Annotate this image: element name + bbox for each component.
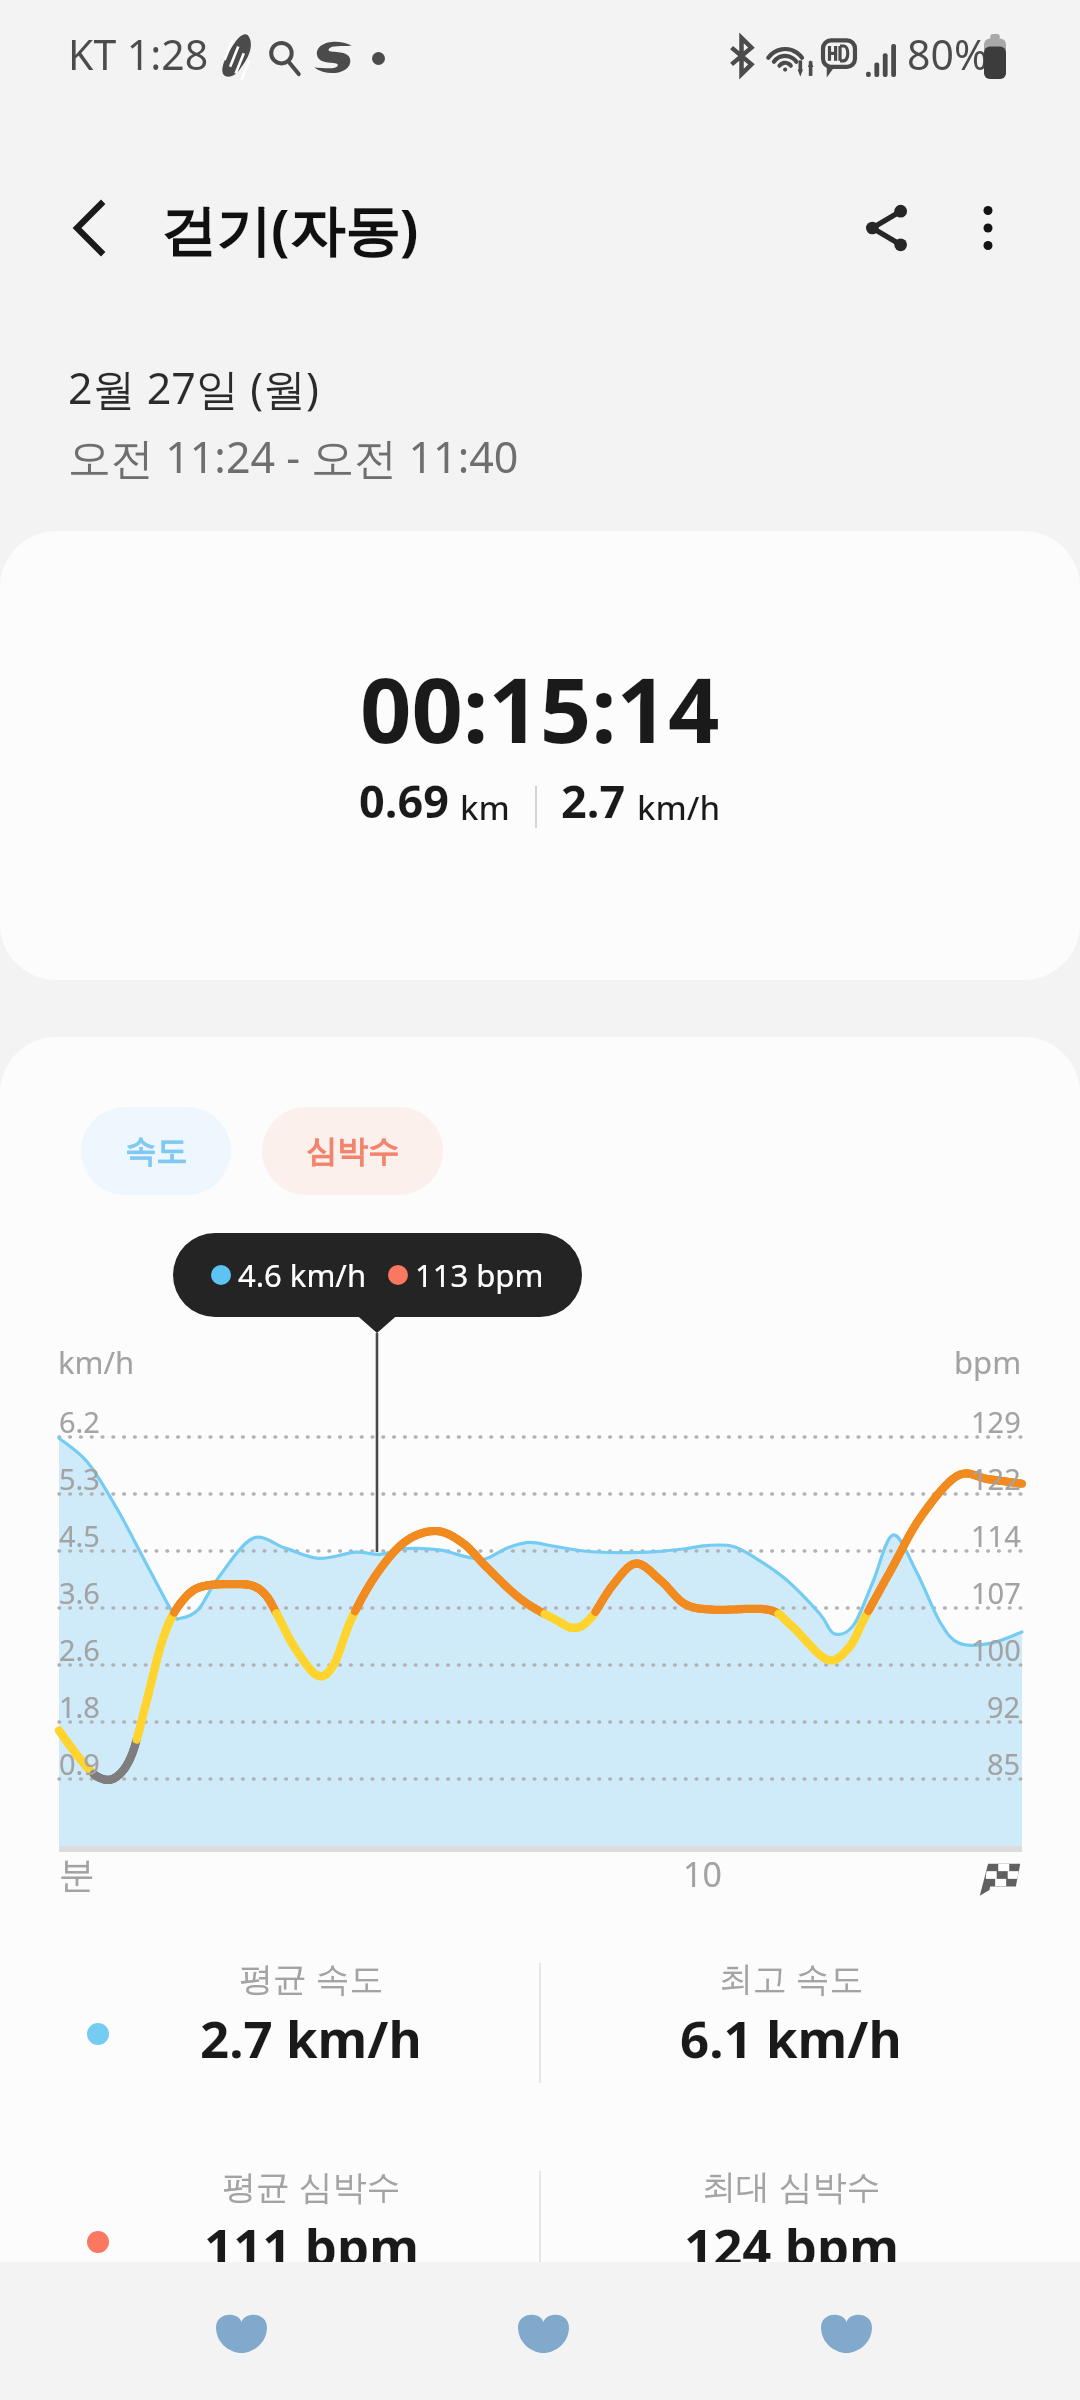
staticText: 6.2 — [59, 1402, 100, 1441]
button[interactable]: 평균 심박수 — [0, 2163, 851, 2280]
staticText: 속도 — [125, 1132, 187, 1171]
staticText: 평균 심박수 — [222, 2163, 401, 2209]
button[interactable]: 심박수 — [262, 1107, 443, 1195]
staticText: 4.5 — [59, 1516, 100, 1555]
button[interactable]: Home — [443, 2262, 643, 2400]
staticText: 심박수 — [306, 1132, 399, 1171]
staticText: 최고 속도 — [719, 1955, 864, 2001]
staticText: 85 — [987, 1744, 1021, 1783]
staticText: 1.8 — [59, 1687, 100, 1726]
staticText: 6.1 km/h — [680, 2003, 902, 2072]
button[interactable]: 최대 심박수 — [251, 2163, 1080, 2280]
button[interactable]: 평균 속도 — [0, 1955, 851, 2072]
button[interactable]: 00:15:14 — [0, 531, 1080, 980]
staticText: 111 bpm — [204, 2211, 419, 2280]
staticText: KT 1:28 — [68, 26, 209, 82]
staticText: 3.6 — [59, 1573, 100, 1612]
staticText: 00:15:14 — [360, 647, 720, 770]
staticText: km — [460, 785, 510, 830]
staticText: 최대 심박수 — [702, 2163, 881, 2209]
button[interactable]: 속도 — [81, 1107, 231, 1195]
staticText: 4.6 km/h — [238, 1254, 367, 1296]
staticText: 129 — [971, 1402, 1021, 1441]
staticText: 92 — [987, 1687, 1021, 1726]
staticText: 2.7 — [561, 770, 626, 831]
staticText: 5.3 — [59, 1459, 100, 1498]
button[interactable]: 최고 속도 — [251, 1955, 1080, 2072]
staticText: 0.9 — [59, 1744, 100, 1783]
staticText: 107 — [971, 1573, 1021, 1612]
staticText: 114 — [971, 1516, 1021, 1555]
staticText: 2월 27일 (월) — [68, 358, 319, 417]
button[interactable]: Share — [838, 180, 934, 276]
staticText: 0.69 — [359, 770, 449, 831]
staticText: 80% — [907, 26, 988, 82]
staticText: 오전 11:24 - 오전 11:40 — [68, 427, 519, 486]
staticText: 분 — [59, 1852, 95, 1897]
staticText: 100 — [971, 1630, 1021, 1669]
button[interactable]: Back — [746, 2262, 946, 2400]
staticText: 평균 속도 — [239, 1955, 384, 2001]
staticText: 2.7 km/h — [200, 2003, 422, 2072]
staticText: 걷기(자동) — [161, 191, 419, 266]
button[interactable]: More options — [940, 180, 1036, 276]
staticText: 113 bpm — [415, 1254, 544, 1296]
button[interactable]: Recents — [141, 2262, 341, 2400]
staticText: 122 — [971, 1459, 1021, 1498]
staticText: 2.6 — [59, 1630, 100, 1669]
button[interactable]: Back — [42, 181, 136, 275]
staticText: km/h — [58, 1341, 135, 1383]
staticText: 10 — [683, 1851, 722, 1897]
staticText: bpm — [954, 1341, 1022, 1383]
staticText: 124 bpm — [684, 2211, 899, 2280]
staticText: km/h — [637, 785, 721, 830]
